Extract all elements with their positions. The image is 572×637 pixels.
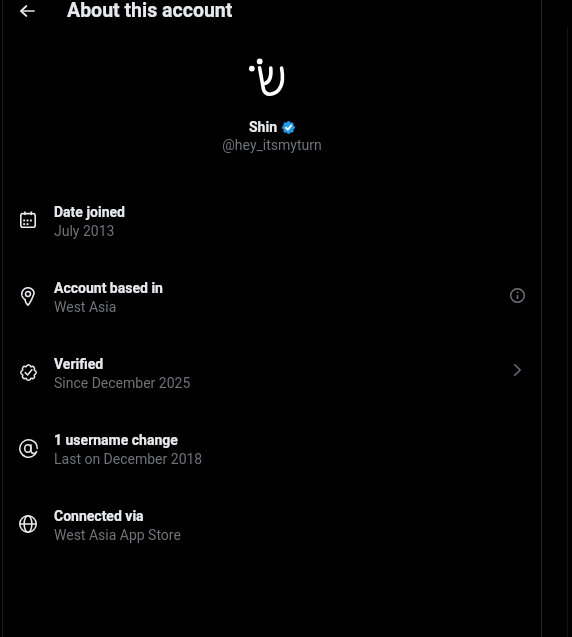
button[interactable]: Date joined xyxy=(3,199,541,275)
staticText: @hey_itsmyturn xyxy=(222,137,322,153)
staticText: Verified xyxy=(54,356,104,372)
button[interactable]: 1 username change xyxy=(3,427,541,503)
button[interactable]: Verified xyxy=(3,351,541,427)
staticText: West Asia App Store xyxy=(54,527,181,543)
button[interactable]: More information xyxy=(499,277,535,313)
staticText: Last on December 2018 xyxy=(54,451,203,467)
staticText: About this account xyxy=(67,0,233,22)
staticText: Date joined xyxy=(54,204,125,220)
button[interactable]: Account based in xyxy=(3,275,541,351)
staticText: Account based in xyxy=(54,280,163,296)
button[interactable]: Connected via xyxy=(3,503,541,579)
staticText: Shin xyxy=(249,119,277,135)
staticText: July 2013 xyxy=(54,223,115,239)
button[interactable]: Back xyxy=(8,0,46,22)
staticText: Since December 2025 xyxy=(54,375,191,391)
staticText: 1 username change xyxy=(54,432,178,448)
staticText: West Asia xyxy=(54,299,117,315)
staticText: Connected via xyxy=(54,508,144,524)
